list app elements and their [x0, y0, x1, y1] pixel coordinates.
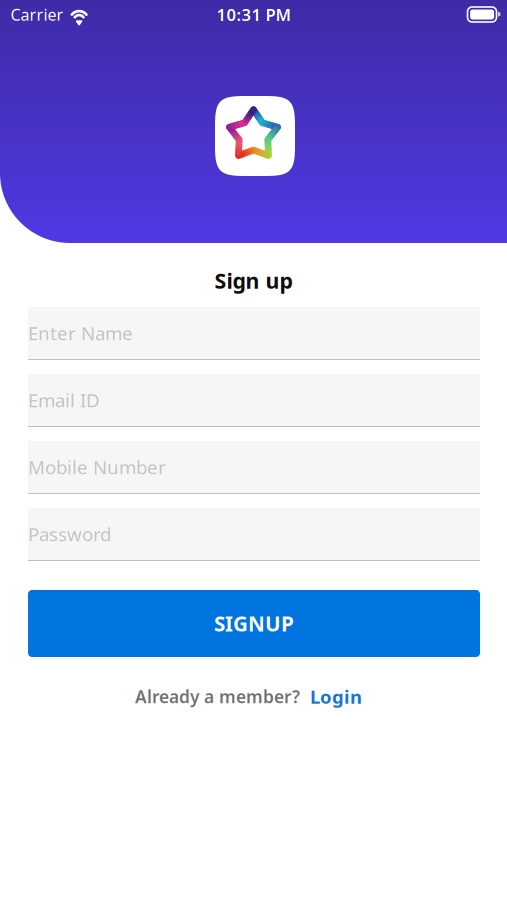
- button[interactable]: SIGNUP: [28, 590, 480, 657]
- button[interactable]: Already a member?: [135, 684, 362, 709]
- staticText: Carrier: [10, 4, 63, 25]
- staticText: Password: [28, 521, 111, 547]
- button[interactable]: Mobile Number: [28, 441, 480, 494]
- staticText: Mobile Number: [28, 454, 166, 480]
- button[interactable]: Enter Name: [28, 307, 480, 360]
- button[interactable]: Password: [28, 508, 480, 561]
- staticText: 10:31 PM: [216, 3, 290, 26]
- staticText: SIGNUP: [214, 609, 294, 637]
- staticText: Email ID: [28, 387, 100, 413]
- button[interactable]: Email ID: [28, 374, 480, 427]
- staticText: Already a member?: [135, 685, 300, 708]
- staticText: Sign up: [214, 266, 292, 295]
- staticText: Login: [310, 684, 362, 709]
- staticText: Enter Name: [28, 320, 133, 346]
